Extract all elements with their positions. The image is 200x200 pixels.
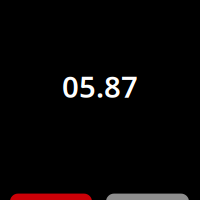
- button[interactable]: Lap: [106, 194, 189, 200]
- button[interactable]: Stop: [10, 194, 92, 200]
- staticText: 05.87: [62, 67, 138, 106]
